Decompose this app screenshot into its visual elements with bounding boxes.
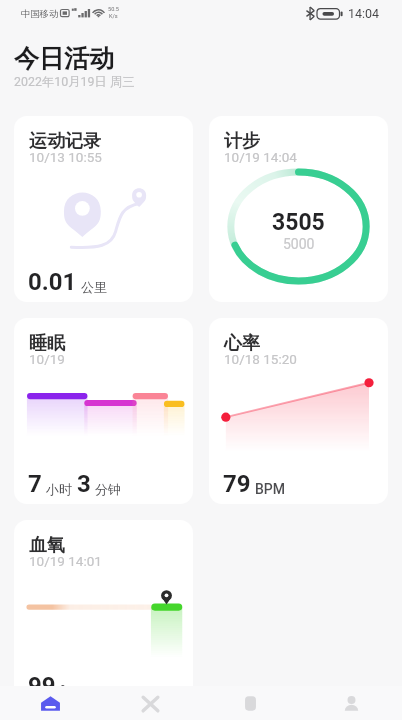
- button[interactable]: 运动记录: [14, 116, 193, 302]
- button[interactable]: 睡眠: [14, 318, 193, 504]
- staticText: 10/19 14:04: [224, 149, 297, 165]
- staticText: 5000: [283, 236, 315, 252]
- staticText: 10/18 15:20: [224, 351, 297, 367]
- staticText: 中国移动: [21, 8, 59, 20]
- staticText: 运动记录: [29, 130, 101, 153]
- button[interactable]: 3505: [209, 116, 388, 302]
- staticText: 公里: [81, 279, 107, 295]
- button[interactable]: 我的: [301, 686, 402, 720]
- staticText: 50.5: [108, 6, 119, 13]
- staticText: 小时: [46, 481, 72, 497]
- staticText: 14:04: [348, 6, 380, 21]
- staticText: 0.01: [28, 268, 77, 296]
- staticText: 2022年10月19日 周三: [14, 74, 135, 90]
- staticText: BPM: [255, 481, 286, 497]
- staticText: 79: [223, 470, 251, 498]
- staticText: 血氧: [29, 534, 65, 557]
- button[interactable]: 运动: [100, 686, 200, 720]
- staticText: 10/13 10:55: [29, 149, 102, 165]
- staticText: %: [60, 683, 71, 699]
- staticText: 睡眠: [29, 332, 65, 355]
- button[interactable]: 血氧: [14, 520, 193, 706]
- button[interactable]: 首页: [0, 686, 100, 720]
- staticText: 计步: [224, 130, 260, 153]
- button[interactable]: 心率: [209, 318, 388, 504]
- staticText: 10/19 14:01: [29, 553, 102, 569]
- staticText: 10/19: [29, 351, 65, 367]
- staticText: 分钟: [95, 481, 121, 497]
- staticText: K/s: [109, 13, 118, 20]
- button[interactable]: 设备: [200, 686, 301, 720]
- staticText: 3505: [272, 209, 325, 236]
- staticText: 心率: [224, 332, 260, 355]
- staticText: 7: [28, 470, 42, 498]
- staticText: 99: [28, 672, 56, 700]
- staticText: 3: [77, 470, 91, 498]
- staticText: 今日活动: [14, 43, 114, 74]
